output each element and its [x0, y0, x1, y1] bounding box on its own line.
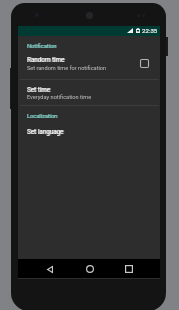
staticText: Notification [27, 43, 57, 50]
staticText: Localization [27, 113, 58, 120]
staticText: 22:35 [142, 27, 158, 34]
staticText: Set random time for notification [27, 65, 107, 72]
staticText: Random time [28, 56, 66, 63]
button[interactable]: Back [43, 263, 57, 276]
staticText: Set time [27, 86, 51, 93]
staticText: Random time [27, 56, 65, 63]
staticText: Set language [27, 128, 64, 135]
staticText: Localization [28, 113, 59, 120]
staticText: Set language [28, 128, 65, 135]
button[interactable] [18, 124, 160, 141]
staticText: Notification [28, 43, 58, 50]
button[interactable] [18, 80, 160, 105]
button[interactable]: Random time checkbox [140, 59, 149, 68]
button[interactable]: Home [83, 262, 95, 274]
staticText: Set time [28, 86, 52, 93]
button[interactable]: Recent apps [122, 263, 134, 275]
button[interactable] [18, 53, 160, 79]
staticText: Everyday notification time [27, 94, 92, 101]
